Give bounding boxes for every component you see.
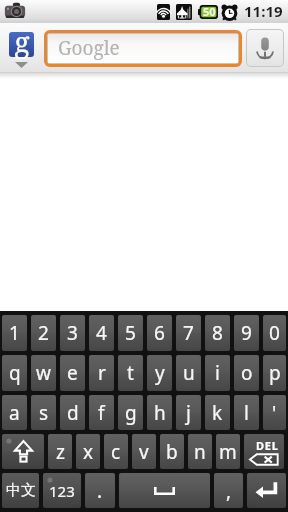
staticText: q xyxy=(9,360,21,386)
staticText: DEL xyxy=(256,438,279,453)
staticText: b xyxy=(166,439,178,465)
staticText: l xyxy=(244,400,249,426)
button[interactable]: n xyxy=(188,434,212,469)
staticText: i xyxy=(215,360,220,386)
staticText: p xyxy=(269,360,281,386)
button[interactable]: l xyxy=(234,395,259,430)
button[interactable]: 9 xyxy=(234,315,259,351)
staticText: 1 xyxy=(9,320,20,346)
button[interactable]: w xyxy=(31,355,56,391)
other: Camera xyxy=(4,2,26,19)
button[interactable]: q xyxy=(2,355,27,391)
button[interactable]: Enter xyxy=(247,473,286,508)
button[interactable]: 5 xyxy=(118,315,143,351)
button[interactable]: 4 xyxy=(89,315,114,351)
button[interactable]: t xyxy=(118,355,143,391)
button[interactable]: 8 xyxy=(205,315,230,351)
staticText: h xyxy=(154,400,166,426)
staticText: ' xyxy=(272,400,277,426)
staticText: . xyxy=(97,478,103,504)
button[interactable]: v xyxy=(132,434,156,469)
staticText: z xyxy=(56,439,65,465)
button[interactable]: 2 xyxy=(31,315,56,351)
button[interactable]: Shift xyxy=(2,434,44,469)
staticText: 中文 xyxy=(6,481,36,500)
button[interactable]: r xyxy=(89,355,114,391)
staticText: 5 xyxy=(125,320,136,346)
staticText: g xyxy=(125,400,137,426)
staticText: 4 xyxy=(96,320,107,346)
button[interactable]: 3 xyxy=(60,315,85,351)
staticText: 2 xyxy=(38,320,49,346)
staticText: t xyxy=(127,360,134,386)
staticText: , xyxy=(226,478,232,504)
button[interactable]: p xyxy=(263,355,286,391)
staticText: 6 xyxy=(154,320,165,346)
button[interactable]: ' xyxy=(263,395,286,430)
button[interactable]: 1 xyxy=(2,315,27,351)
staticText: 9 xyxy=(241,320,252,346)
staticText: 3 xyxy=(67,320,78,346)
button[interactable]: Search engine selector xyxy=(0,23,44,72)
button[interactable]: 中文 xyxy=(2,473,39,508)
staticText: 123 xyxy=(49,481,75,501)
staticText: g xyxy=(14,22,30,60)
staticText: 8 xyxy=(212,320,223,346)
button[interactable]: g xyxy=(118,395,143,430)
staticText: n xyxy=(194,439,206,465)
button[interactable]: u xyxy=(176,355,201,391)
button[interactable]: e xyxy=(60,355,85,391)
button[interactable]: Delete xyxy=(244,434,284,469)
button[interactable]: 7 xyxy=(176,315,201,351)
button[interactable]: j xyxy=(176,395,201,430)
button[interactable]: c xyxy=(104,434,128,469)
button[interactable]: 0 xyxy=(263,315,286,351)
staticText: j xyxy=(186,400,191,426)
button[interactable]: a xyxy=(2,395,27,430)
staticText: d xyxy=(67,400,79,426)
staticText: w xyxy=(36,360,51,386)
staticText: y xyxy=(155,360,165,386)
staticText: o xyxy=(241,360,253,386)
button[interactable]: Voice search xyxy=(247,30,283,66)
button[interactable]: f xyxy=(89,395,114,430)
button[interactable]: d xyxy=(60,395,85,430)
button[interactable]: , xyxy=(214,473,243,508)
button[interactable]: s xyxy=(31,395,56,430)
button[interactable]: Space xyxy=(119,473,210,508)
staticText: 0 xyxy=(269,320,280,346)
staticText: r xyxy=(98,360,106,386)
staticText: 11:19 xyxy=(244,1,283,21)
staticText: 50 xyxy=(203,4,216,19)
button[interactable]: h xyxy=(147,395,172,430)
staticText: x xyxy=(83,439,94,465)
staticText: m xyxy=(219,439,237,465)
button[interactable]: o xyxy=(234,355,259,391)
button[interactable]: m xyxy=(216,434,240,469)
staticText: a xyxy=(9,400,20,426)
button[interactable]: . xyxy=(85,473,115,508)
button[interactable]: k xyxy=(205,395,230,430)
staticText: Google xyxy=(58,35,120,61)
button[interactable]: x xyxy=(76,434,100,469)
button[interactable]: z xyxy=(48,434,72,469)
staticText: 7 xyxy=(183,320,194,346)
staticText: s xyxy=(39,400,49,426)
button[interactable]: b xyxy=(160,434,184,469)
button[interactable]: 123 xyxy=(43,473,81,508)
button[interactable]: i xyxy=(205,355,230,391)
staticText: e xyxy=(67,360,78,386)
staticText: k xyxy=(212,400,223,426)
staticText: v xyxy=(139,439,149,465)
staticText: u xyxy=(183,360,195,386)
button[interactable]: Google xyxy=(48,34,238,63)
button[interactable]: y xyxy=(147,355,172,391)
staticText: f xyxy=(98,400,105,426)
button[interactable]: 6 xyxy=(147,315,172,351)
staticText: c xyxy=(111,439,121,465)
